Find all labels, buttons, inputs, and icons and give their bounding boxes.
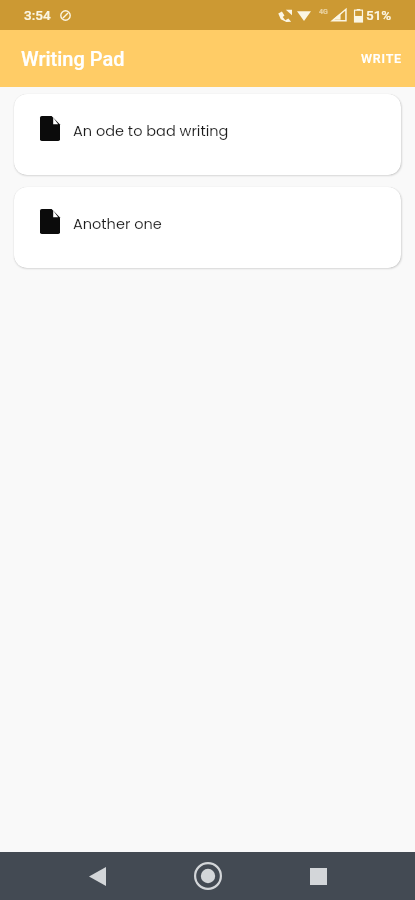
button[interactable]: Recent apps (287, 852, 349, 900)
staticText: 4G (319, 8, 328, 16)
staticText: 51% (366, 7, 392, 23)
button[interactable]: Another one (14, 187, 401, 268)
button[interactable]: WRITE (345, 39, 415, 78)
staticText: WRITE (361, 51, 402, 66)
staticText: 3:54 (24, 7, 51, 23)
button[interactable]: Home (177, 852, 239, 900)
staticText: Writing Pad (21, 47, 125, 70)
button[interactable]: Back (66, 852, 128, 900)
button[interactable]: An ode to bad writing (14, 94, 401, 175)
staticText: An ode to bad writing (73, 121, 229, 141)
staticText: Another one (73, 214, 162, 234)
